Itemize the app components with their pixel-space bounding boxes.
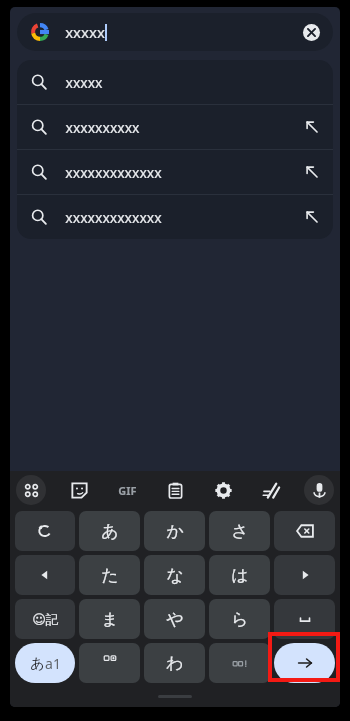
staticText: xxxxx	[65, 73, 103, 92]
staticText: GIF	[118, 483, 137, 498]
staticText: は	[231, 565, 249, 586]
staticText: ら	[231, 609, 249, 630]
staticText: わ	[166, 653, 184, 674]
staticText: xxxxxxxxxxxxx	[65, 208, 162, 227]
button[interactable]: xxxxx	[17, 13, 333, 51]
staticText: な	[166, 565, 184, 586]
staticText: あ	[101, 521, 119, 542]
button[interactable]: xxxxxxxxxxxxx	[17, 150, 333, 194]
staticText: ま	[101, 609, 119, 630]
staticText: さ	[231, 521, 249, 542]
staticText: あ	[30, 655, 45, 673]
staticText: か	[166, 521, 184, 542]
button[interactable]: や	[144, 599, 205, 639]
staticText: ☺記	[32, 611, 59, 627]
button[interactable]: Apps	[16, 475, 46, 505]
staticText: xxxxxxxxxxxxx	[65, 163, 162, 182]
button[interactable]: Handwriting	[256, 475, 286, 505]
button[interactable]: Settings	[208, 475, 238, 505]
button[interactable]: Move right	[274, 555, 335, 595]
button[interactable]: は	[209, 555, 270, 595]
staticText: xxxxx	[65, 22, 105, 42]
button[interactable]: Punctuation	[209, 643, 270, 683]
button[interactable]: さ	[209, 511, 270, 551]
button[interactable]: ま	[79, 599, 140, 639]
staticText: た	[101, 565, 119, 586]
button[interactable]: Dakuten	[79, 643, 140, 683]
button[interactable]: た	[79, 555, 140, 595]
button[interactable]: わ	[144, 643, 205, 683]
button[interactable]: Space	[274, 599, 335, 639]
button[interactable]: Move left	[15, 555, 75, 595]
button[interactable]: GIF	[112, 475, 142, 505]
button[interactable]: Undo	[15, 511, 75, 551]
button[interactable]: あ	[15, 643, 75, 683]
staticText: や	[166, 609, 184, 630]
button[interactable]: Clear query	[297, 18, 325, 46]
button[interactable]: Stickers	[64, 475, 94, 505]
button[interactable]: xxxxxxxxxxxxx	[17, 195, 333, 239]
staticText: xxxxxxxxxx	[65, 118, 140, 137]
button[interactable]: あ	[79, 511, 140, 551]
button[interactable]: Enter	[274, 643, 335, 683]
button[interactable]: xxxxx	[17, 60, 333, 104]
button[interactable]: xxxxxxxxxx	[17, 105, 333, 149]
button[interactable]: か	[144, 511, 205, 551]
button[interactable]: ら	[209, 599, 270, 639]
button[interactable]: な	[144, 555, 205, 595]
button[interactable]: Backspace	[274, 511, 335, 551]
button[interactable]: ☺記	[15, 599, 75, 639]
button[interactable]: Voice input	[304, 475, 334, 505]
staticText: a1	[45, 654, 61, 673]
button[interactable]: Clipboard	[160, 475, 190, 505]
